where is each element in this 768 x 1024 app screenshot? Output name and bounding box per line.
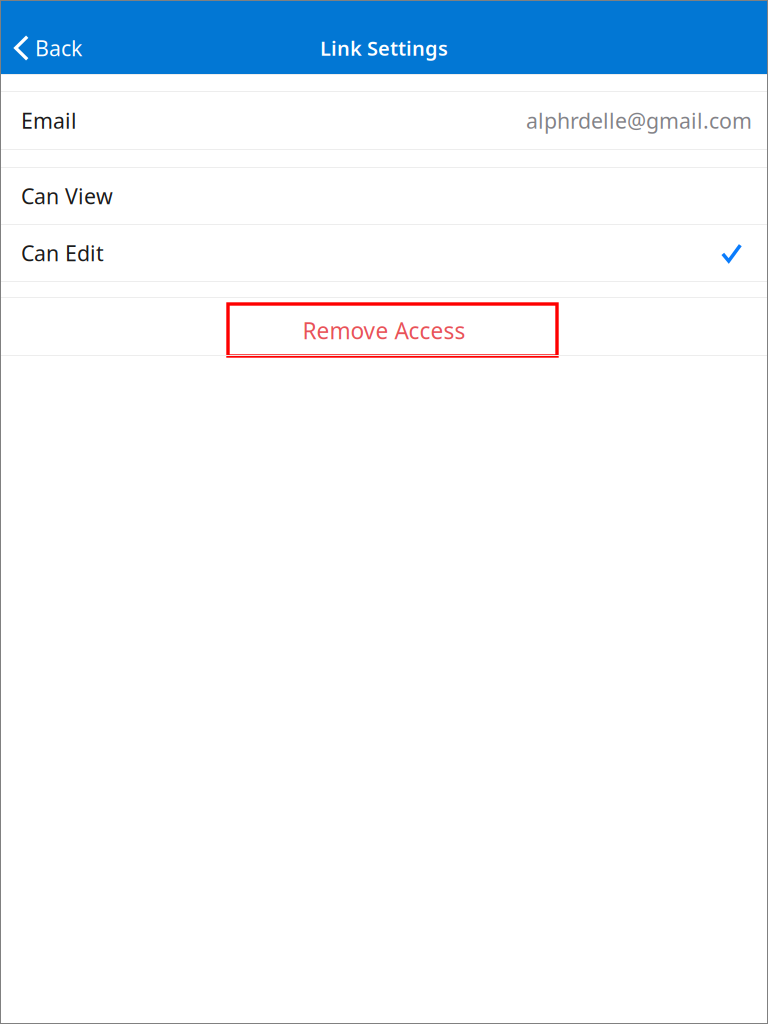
staticText: Can View	[21, 182, 113, 210]
button[interactable]: Email	[0, 92, 768, 149]
staticText: Remove Access	[302, 315, 465, 345]
staticText: Email	[21, 106, 77, 135]
staticText: Can Edit	[21, 239, 104, 267]
button[interactable]: Can View	[0, 168, 768, 224]
staticText: Back	[35, 34, 82, 62]
staticText: alphrdelle@gmail.com	[526, 106, 752, 135]
button[interactable]: Remove Access	[0, 298, 768, 355]
button[interactable]: Can Edit	[0, 225, 768, 281]
staticText: Link Settings	[320, 35, 448, 61]
button[interactable]: Back	[0, 22, 96, 73]
